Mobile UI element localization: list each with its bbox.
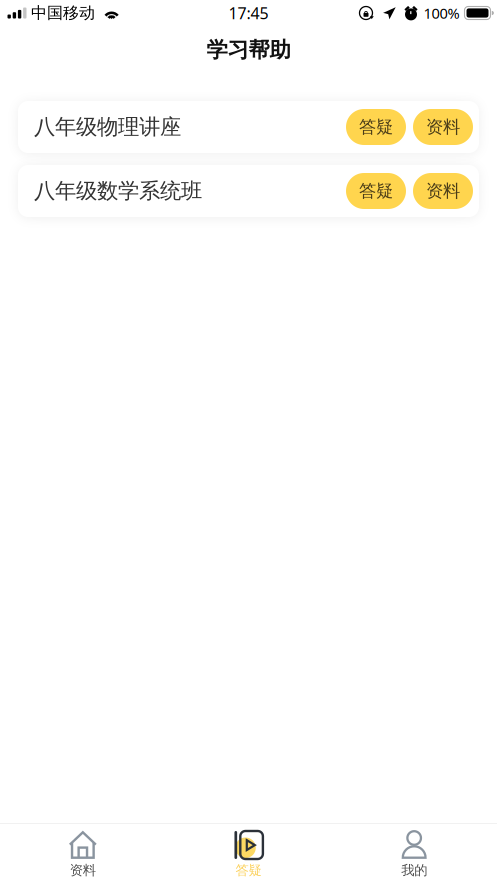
button[interactable]: 答疑 [346,109,406,145]
staticText: 中国移动 [31,3,95,23]
button[interactable]: 资料 [0,824,166,883]
staticText: 答疑 [235,862,261,878]
staticText: 17:45 [228,2,268,24]
staticText: 资料 [426,116,460,138]
staticText: 我的 [401,862,427,878]
button[interactable]: 资料 [413,173,473,209]
staticText: 八年级数学系统班 [34,178,202,204]
staticText: 资料 [70,862,96,878]
staticText: 100% [423,3,459,23]
staticText: 学习帮助 [206,37,290,63]
staticText: 答疑 [359,116,393,138]
staticText: 资料 [426,180,460,202]
button[interactable]: 我的 [331,824,497,883]
button[interactable]: 资料 [413,109,473,145]
staticText: 八年级物理讲座 [34,114,181,140]
staticText: 答疑 [359,180,393,202]
button[interactable]: 答疑 [166,824,331,883]
button[interactable]: 答疑 [346,173,406,209]
